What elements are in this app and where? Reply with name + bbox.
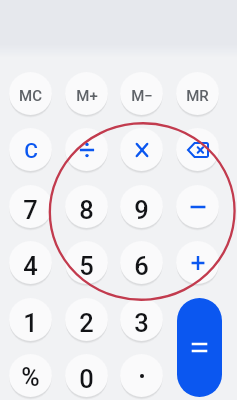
staticText: 6 xyxy=(134,251,149,281)
button[interactable]: 4 xyxy=(9,241,52,284)
button[interactable]: % xyxy=(9,354,52,397)
button[interactable]: M− xyxy=(120,72,163,115)
button[interactable]: M+ xyxy=(65,72,108,115)
button[interactable]: Divide xyxy=(65,128,108,171)
button[interactable]: 5 xyxy=(65,241,108,284)
button[interactable]: MR xyxy=(176,72,219,115)
staticText: 2 xyxy=(79,308,94,338)
button[interactable]: Equals xyxy=(177,298,222,397)
staticText: % xyxy=(21,363,40,392)
staticText: M+ xyxy=(76,87,98,105)
button[interactable]: MC xyxy=(9,72,52,115)
staticText: 1 xyxy=(23,308,38,338)
staticText: 7 xyxy=(23,195,38,225)
button[interactable]: Minus xyxy=(176,185,219,228)
staticText: MC xyxy=(19,87,42,105)
button[interactable]: Clear xyxy=(9,128,52,171)
button[interactable]: Multiply xyxy=(120,128,163,171)
button[interactable]: 2 xyxy=(65,298,108,341)
button[interactable]: Decimal point xyxy=(120,354,163,397)
button[interactable]: 0 xyxy=(65,354,108,397)
staticText: MR xyxy=(186,87,209,105)
staticText: C xyxy=(24,139,38,164)
button[interactable]: 7 xyxy=(9,185,52,228)
staticText: M− xyxy=(131,87,153,105)
staticText: 0 xyxy=(79,364,94,394)
button[interactable]: 6 xyxy=(120,241,163,284)
staticText: 5 xyxy=(79,251,94,281)
staticText: 3 xyxy=(134,308,149,338)
button[interactable]: 9 xyxy=(120,185,163,228)
staticText: 8 xyxy=(79,195,94,225)
staticText: 4 xyxy=(23,251,38,281)
staticText: 9 xyxy=(134,195,149,225)
button[interactable]: 1 xyxy=(9,298,52,341)
button[interactable]: Plus xyxy=(176,241,219,284)
button[interactable]: 8 xyxy=(65,185,108,228)
button[interactable]: Backspace xyxy=(176,128,219,171)
button[interactable]: 3 xyxy=(120,298,163,341)
